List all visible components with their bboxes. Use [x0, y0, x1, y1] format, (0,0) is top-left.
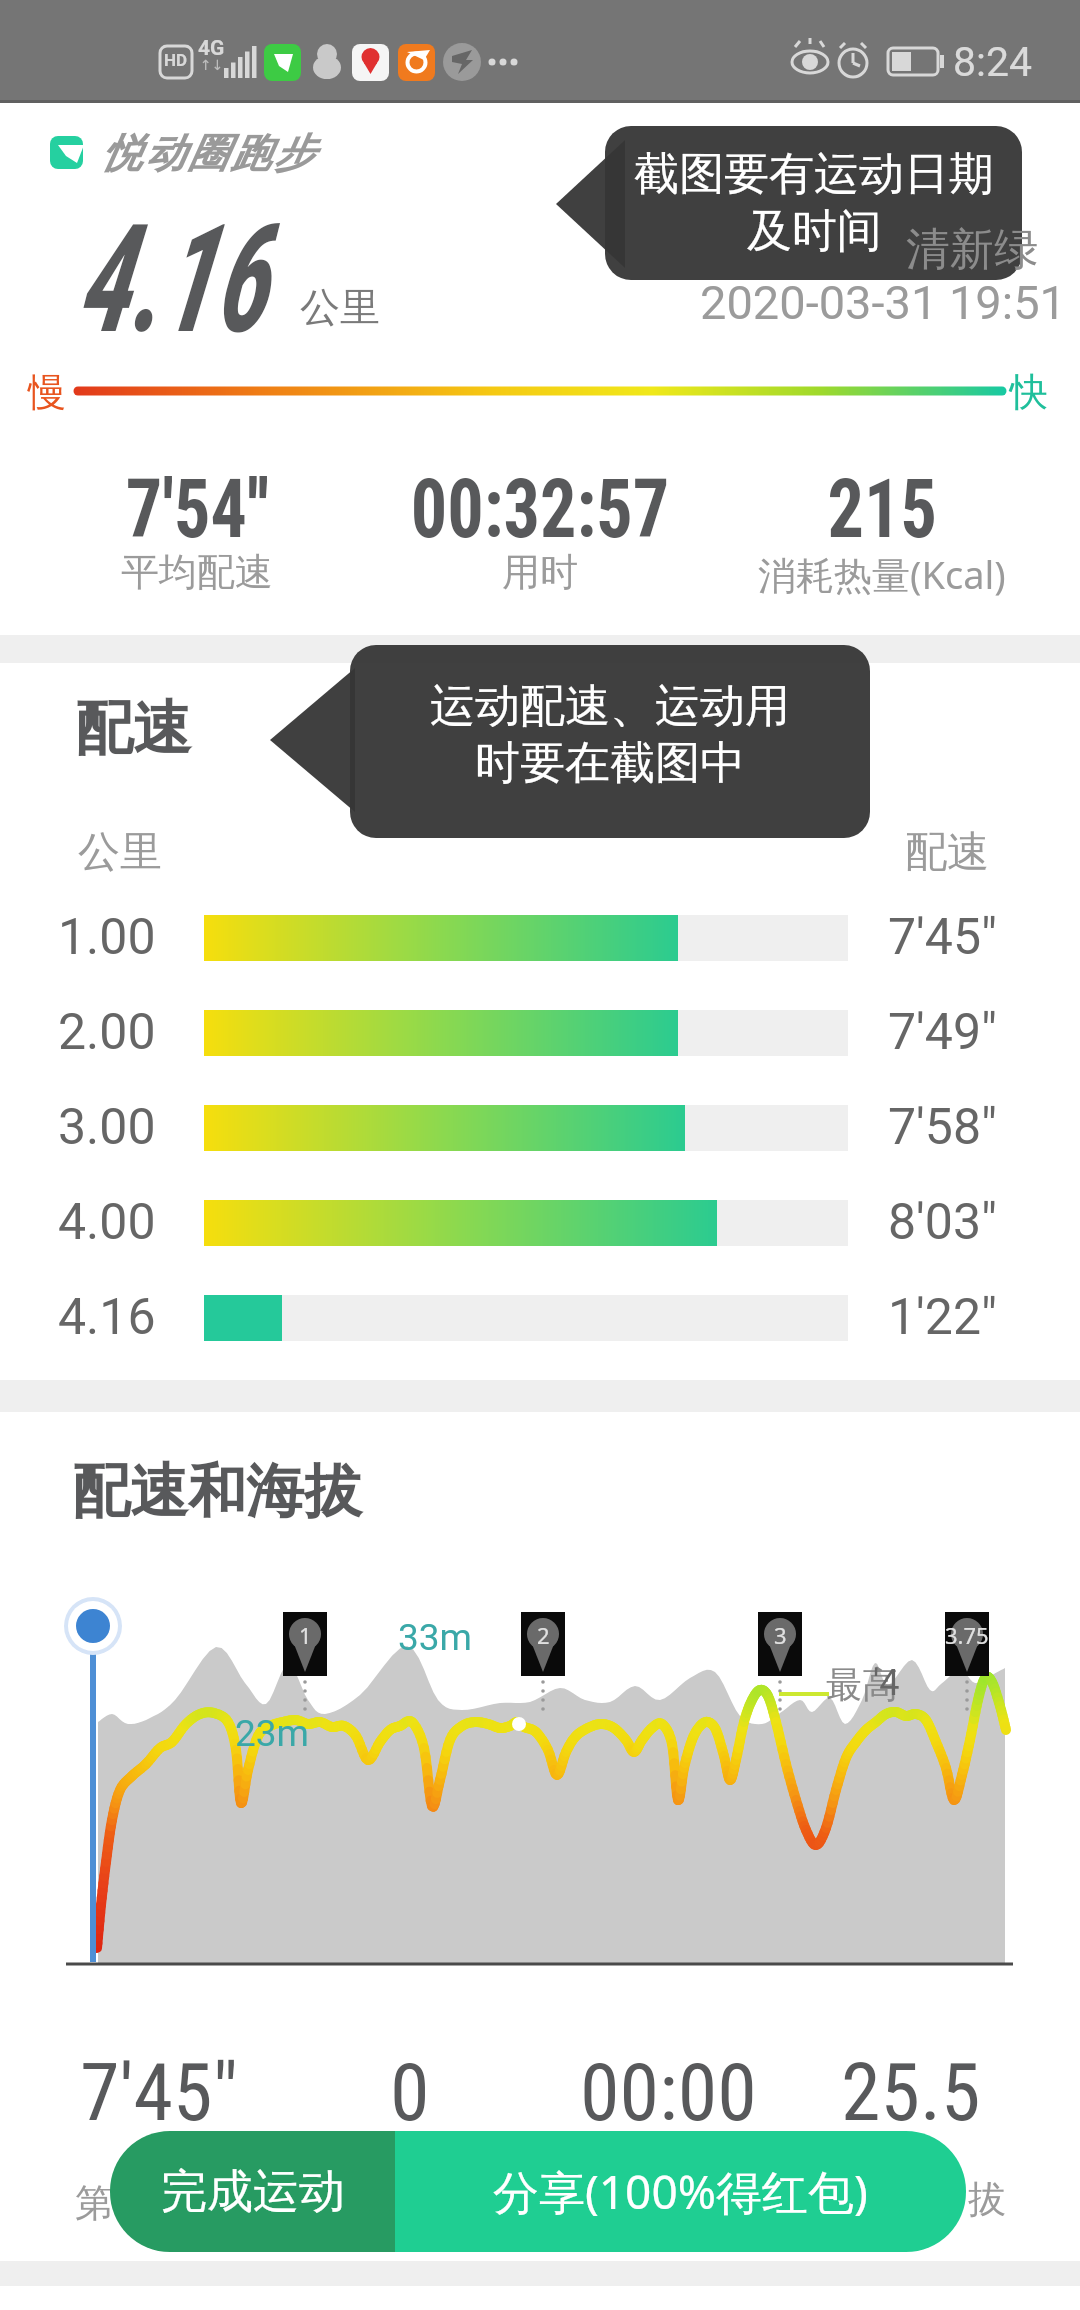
staticText: 快 — [1010, 368, 1048, 416]
staticText: 公里 — [300, 282, 380, 332]
staticText: 3.00 — [58, 1098, 156, 1157]
staticText: 拔 — [968, 2175, 1006, 2223]
staticText: 1'22" — [888, 1288, 998, 1347]
staticText: 4.16 — [58, 1288, 156, 1347]
staticText: 配速 — [905, 826, 989, 879]
staticText: 配速 — [75, 692, 191, 765]
staticText: 消耗热量(Kcal) — [758, 548, 1006, 600]
staticText: HD — [164, 50, 188, 70]
staticText: 7'49" — [888, 1003, 998, 1062]
staticText: 2020-03-31 19:51 — [700, 275, 1066, 330]
staticText: 3.75 — [945, 1620, 989, 1650]
staticText: 8:24 — [953, 38, 1033, 86]
staticText: 用时 — [502, 548, 578, 596]
staticText: 最高 — [826, 1662, 898, 1707]
staticText: 7'58" — [888, 1098, 998, 1157]
staticText: 2.00 — [58, 1003, 156, 1062]
staticText: 215 — [827, 461, 937, 557]
button[interactable]: 分享(100%得红包) — [395, 2131, 966, 2252]
staticText: 清新绿 — [906, 222, 1038, 277]
staticText: 7'45" — [888, 908, 998, 967]
staticText: 25.5 — [841, 2046, 981, 2140]
staticText: 00:00 — [580, 2046, 757, 2140]
staticText: 截图要有运动日期 — [634, 146, 994, 203]
staticText: 7'54'' — [126, 461, 269, 557]
staticText: 33m — [398, 1616, 473, 1659]
staticText: ↑↓ — [200, 57, 224, 73]
staticText: 3 — [774, 1620, 787, 1650]
staticText: 运动配速、运动用 — [430, 678, 790, 735]
staticText: 4.00 — [58, 1193, 156, 1252]
staticText: 悦动圈跑步 — [100, 128, 315, 178]
staticText: 完成运动 — [161, 2163, 345, 2221]
staticText: 8'03" — [888, 1193, 998, 1252]
button[interactable]: 完成运动 — [110, 2131, 395, 2252]
staticText: 公里 — [78, 826, 162, 879]
staticText: 1.00 — [58, 908, 156, 967]
staticText: 7'45" — [80, 2046, 239, 2140]
staticText: 平均配速 — [121, 548, 273, 596]
staticText: 4G — [198, 36, 225, 61]
staticText: 配速和海拔 — [72, 1455, 362, 1528]
staticText: 0 — [390, 2046, 430, 2140]
staticText: 及时间 — [747, 203, 882, 260]
button[interactable] — [50, 136, 83, 169]
staticText: 慢 — [28, 368, 66, 416]
staticText: '4 — [873, 1662, 900, 1704]
staticText: 时要在截图中 — [475, 735, 745, 792]
staticText: 2 — [537, 1620, 550, 1650]
staticText: 第1 — [75, 2175, 135, 2227]
staticText: 1 — [299, 1620, 312, 1650]
staticText: 4.16 — [78, 192, 268, 368]
staticText: 00:32:57 — [411, 461, 669, 557]
staticText: 23m — [235, 1712, 310, 1755]
staticText: 分享(100%得红包) — [493, 2160, 868, 2223]
